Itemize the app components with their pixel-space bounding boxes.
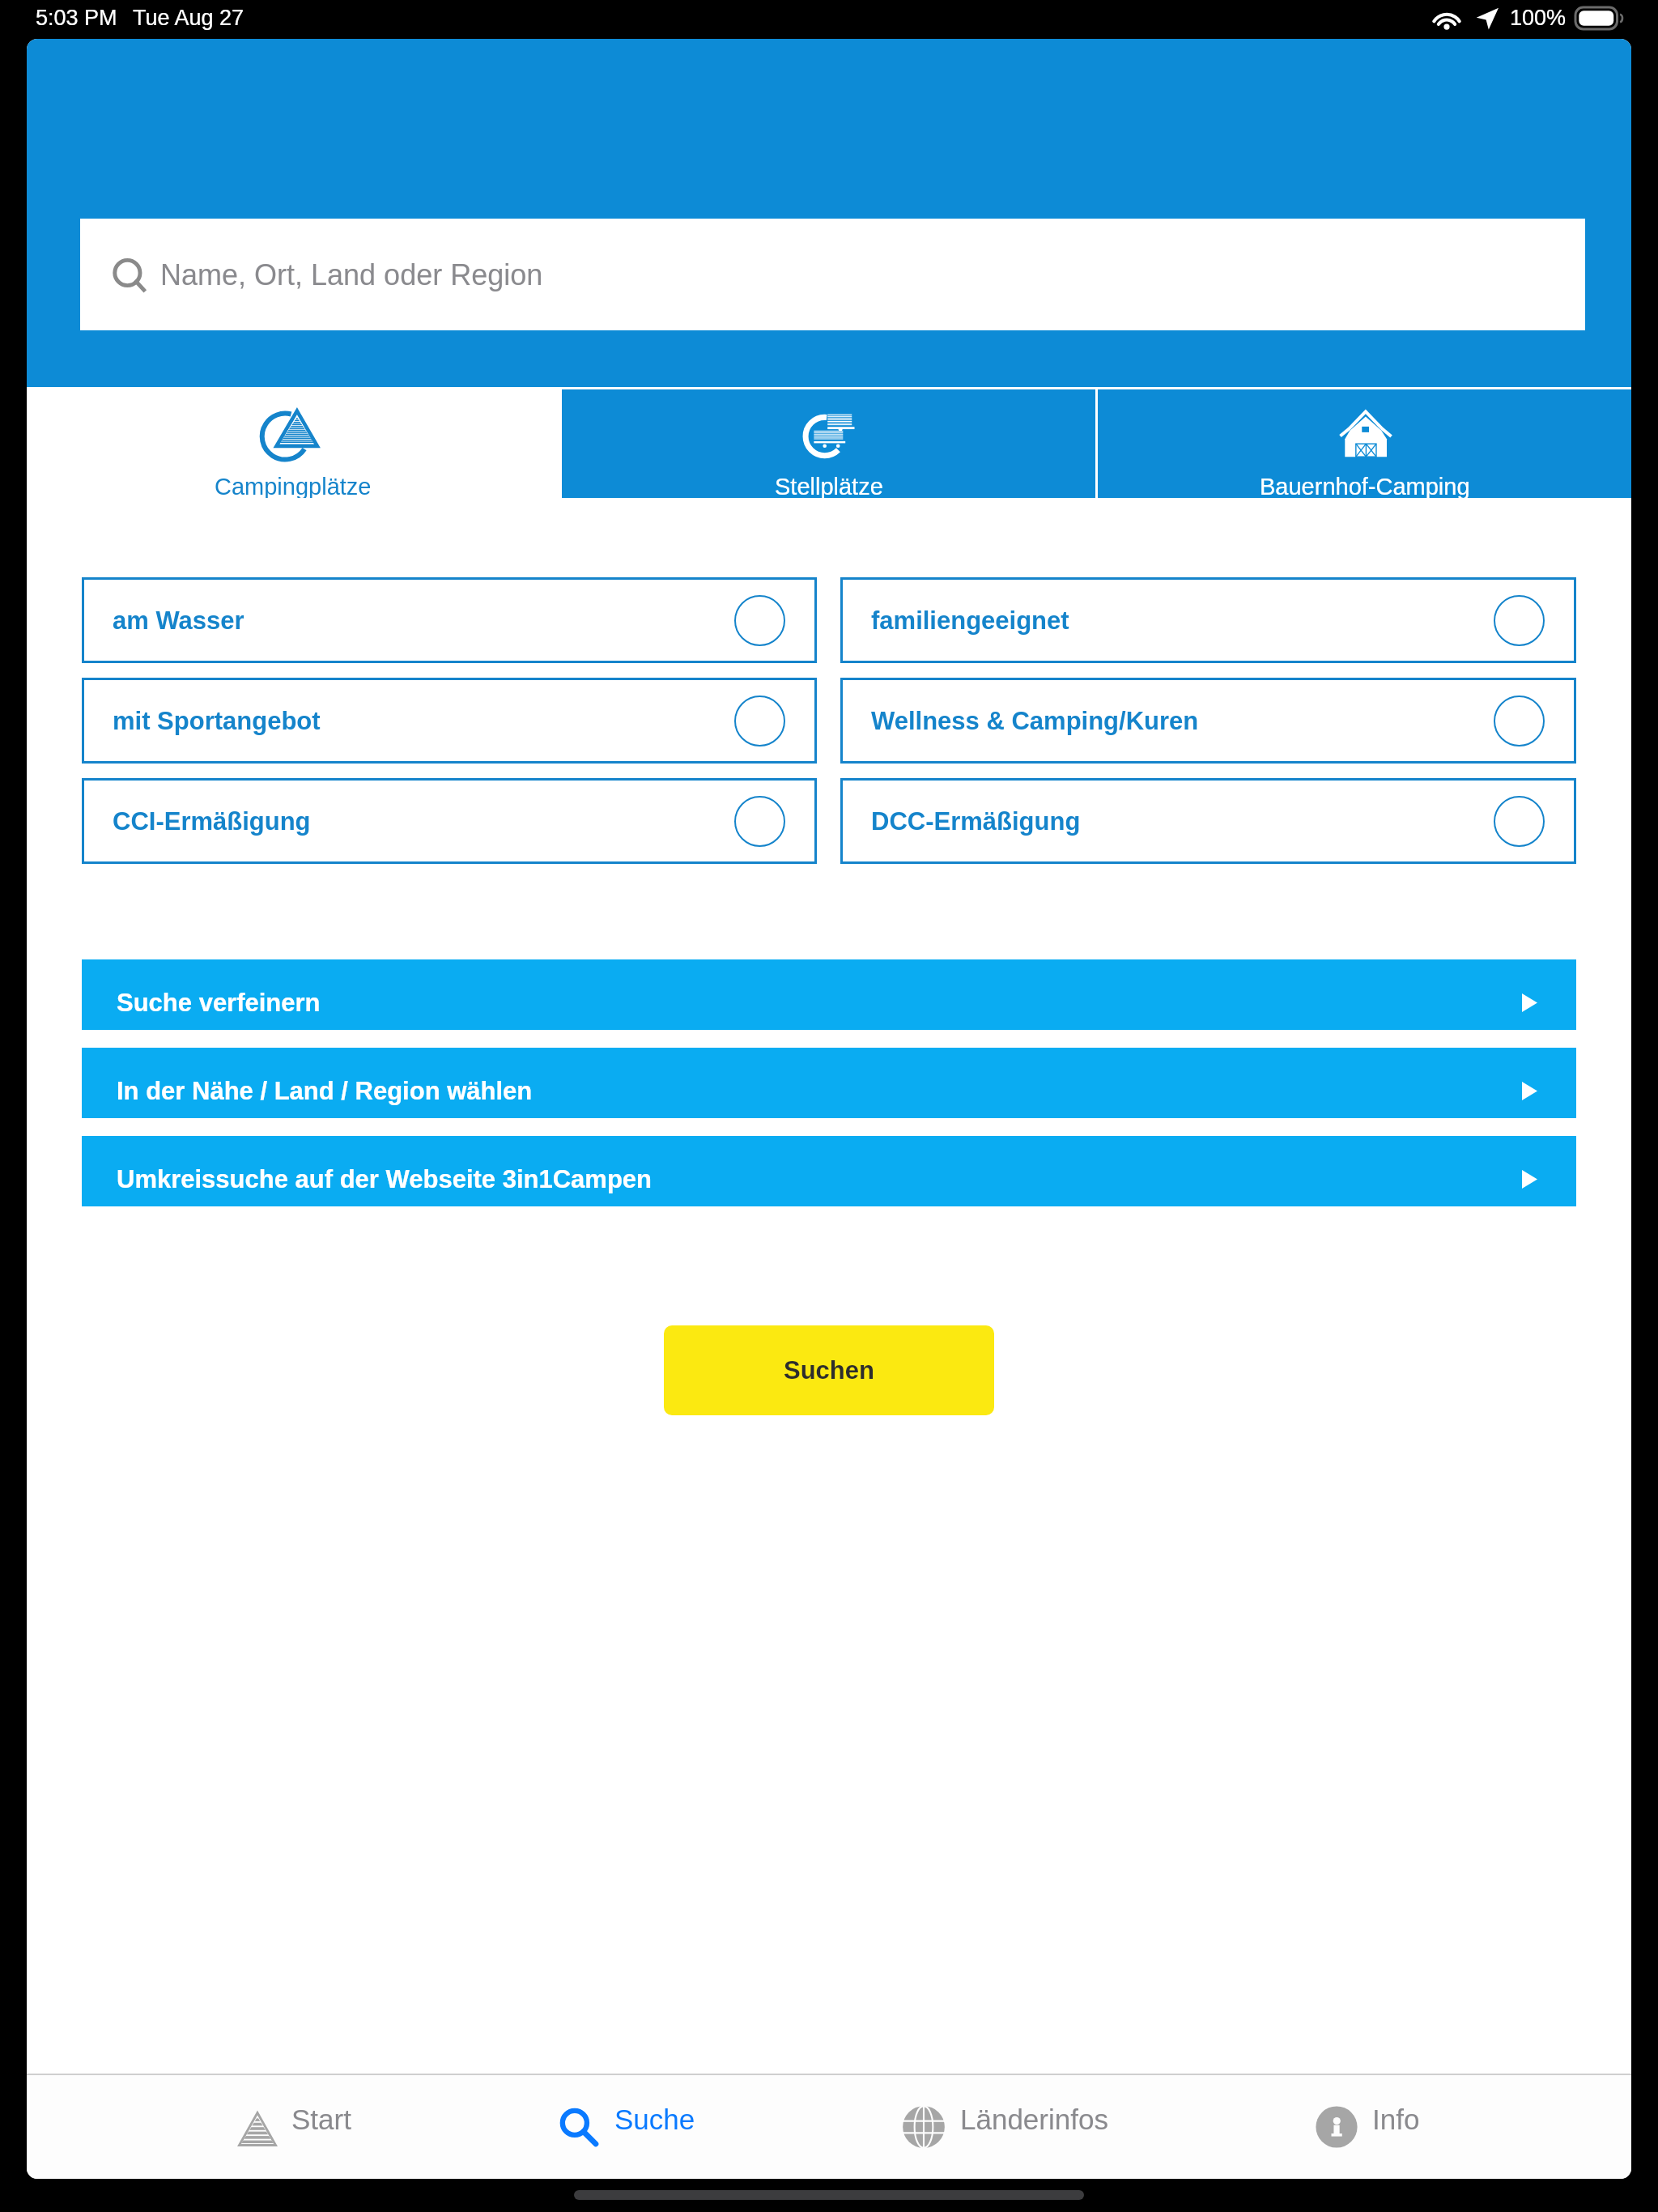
button[interactable]: Start (239, 2075, 351, 2179)
button[interactable]: Länderinfos (903, 2075, 1108, 2179)
button[interactable]: Wellness & Camping/Kuren (840, 678, 1576, 764)
button[interactable]: DCC-Ermäßigung (840, 778, 1576, 864)
staticText: Bauernhof-Camping (1260, 474, 1470, 498)
button[interactable]: familiengeeignet (840, 577, 1576, 663)
button[interactable]: Stellplätze (562, 389, 1095, 498)
staticText: mit Sportangebot (113, 707, 734, 735)
staticText: Umkreissuche auf der Webseite 3in1Campen (117, 1165, 1522, 1193)
button[interactable]: am Wasser (82, 577, 817, 663)
staticText: Suchen (784, 1356, 874, 1385)
button[interactable]: Suche (559, 2075, 695, 2179)
staticText: 5:03 PM (36, 6, 117, 30)
button[interactable]: Campingplätze (27, 389, 559, 498)
staticText: Tue Aug 27 (133, 6, 244, 30)
button[interactable]: Suche verfeinern (82, 959, 1576, 1030)
button[interactable]: mit Sportangebot (82, 678, 817, 764)
staticText: Länderinfos (960, 2104, 1108, 2135)
staticText: Wellness & Camping/Kuren (871, 707, 1494, 735)
staticText: am Wasser (113, 606, 734, 635)
staticText: 100% (1510, 6, 1567, 30)
staticText: DCC-Ermäßigung (871, 807, 1494, 836)
button[interactable]: CCI-Ermäßigung (82, 778, 817, 864)
staticText: Stellplätze (775, 474, 883, 498)
staticText: Campingplätze (215, 474, 372, 498)
staticText: Suche verfeinern (117, 989, 1522, 1017)
button[interactable]: Suchfeld: Name, Ort, Land oder Region (80, 219, 1585, 330)
button[interactable]: Info (1316, 2075, 1420, 2179)
button[interactable]: Umkreissuche auf der Webseite 3in1Campen (82, 1136, 1576, 1206)
button[interactable]: Suchen (664, 1325, 994, 1415)
staticText: familiengeeignet (871, 606, 1494, 635)
staticText: Name, Ort, Land oder Region (160, 258, 543, 291)
staticText: Info (1372, 2104, 1420, 2135)
staticText: In der Nähe / Land / Region wählen (117, 1077, 1522, 1105)
button[interactable]: Bauernhof-Camping (1098, 389, 1631, 498)
staticText: Start (291, 2104, 351, 2135)
button[interactable]: In der Nähe / Land / Region wählen (82, 1048, 1576, 1118)
staticText: CCI-Ermäßigung (113, 807, 734, 836)
staticText: Suche (614, 2104, 695, 2135)
